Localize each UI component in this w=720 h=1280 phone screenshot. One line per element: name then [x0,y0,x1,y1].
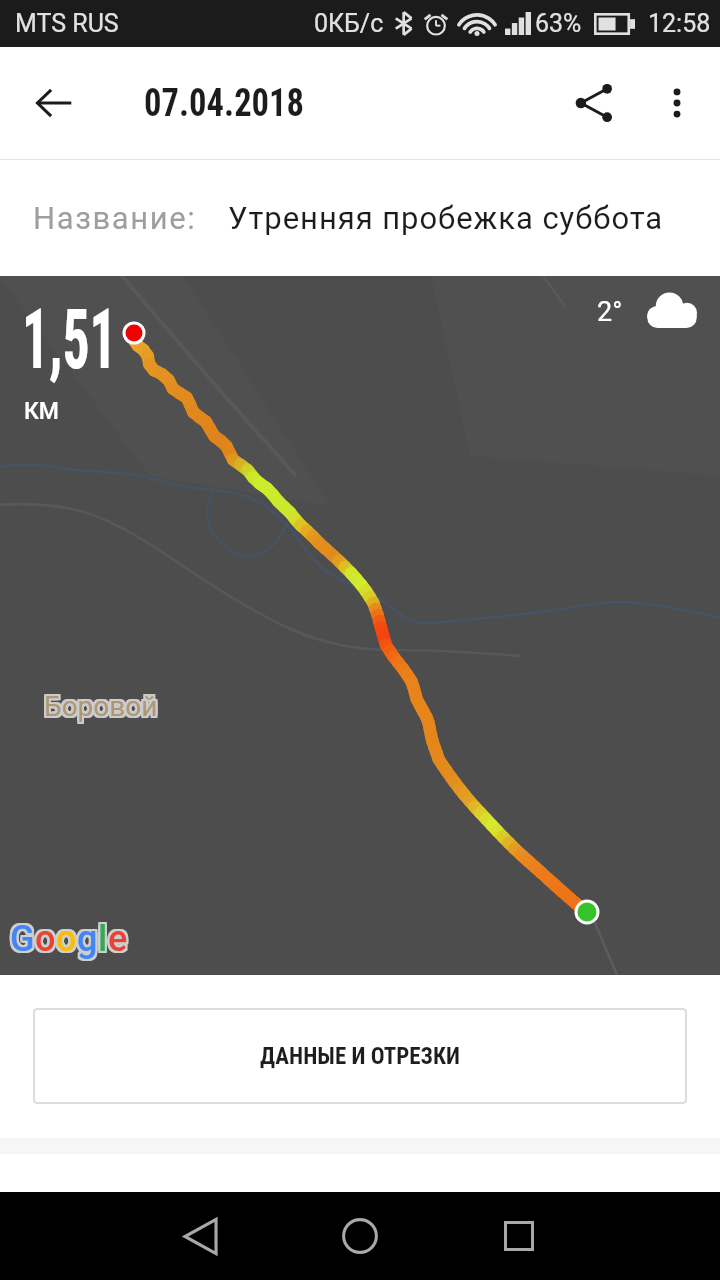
staticText: o [35,918,56,960]
staticText: o [35,916,56,958]
staticText: e [110,920,130,962]
staticText: Боровой [42,692,156,725]
staticText: o [56,920,77,962]
staticText: Боровой [46,688,160,721]
staticText: l [98,920,108,962]
staticText: o [56,916,77,958]
staticText: G [10,916,35,958]
staticText: l [100,920,110,962]
staticText: g [77,918,98,960]
staticText: g [75,916,96,958]
staticText: g [77,920,98,962]
staticText: l [96,916,106,958]
staticText: G [10,920,35,962]
staticText: G [12,920,37,962]
staticText: G [8,918,33,960]
staticText: 63% [535,9,582,38]
staticText: o [56,918,77,960]
staticText: g [79,920,100,962]
staticText: e [106,918,126,960]
staticText: o [33,916,54,958]
staticText: o [35,920,56,962]
staticText: Боровой [44,688,158,721]
staticText: Боровой [42,690,156,723]
staticText: G [10,918,35,960]
button[interactable]: Back [160,1196,240,1276]
staticText: 12:58 [648,9,711,38]
staticText: Боровой [46,690,160,723]
staticText: G [8,920,33,962]
button[interactable]: Back [16,65,92,141]
staticText: e [108,918,128,960]
staticText: КМ [24,398,59,425]
staticText: o [58,916,79,958]
staticText: Боровой [46,692,160,725]
staticText: 1,51 [22,290,117,388]
staticText: l [96,920,106,962]
button[interactable]: Home [320,1196,400,1276]
staticText: o [54,916,75,958]
staticText: G [12,918,37,960]
button[interactable]: Recents [479,1196,559,1276]
staticText: e [108,916,128,958]
staticText: Боровой [44,690,158,723]
staticText: l [100,916,110,958]
staticText: 07.04.2018 [144,81,304,126]
staticText: o [58,918,79,960]
staticText: g [77,916,98,958]
staticText: l [96,918,106,960]
staticText: e [106,920,126,962]
staticText: o [33,920,54,962]
staticText: e [110,918,130,960]
staticText: o [54,920,75,962]
staticText: ДАННЫЕ И ОТРЕЗКИ [260,1043,460,1070]
staticText: MTS RUS [15,9,119,38]
staticText: o [33,918,54,960]
staticText: o [37,918,58,960]
staticText: o [37,916,58,958]
staticText: 2° [597,296,623,328]
staticText: o [37,920,58,962]
staticText: Боровой [44,692,158,725]
staticText: e [108,920,128,962]
staticText: l [98,918,108,960]
button[interactable]: More options [639,65,715,141]
staticText: G [12,916,37,958]
staticText: g [79,916,100,958]
staticText: Боровой [42,688,156,721]
staticText: e [110,916,130,958]
staticText: 0КБ/c [314,9,384,38]
staticText: e [106,916,126,958]
button[interactable]: ДАННЫЕ И ОТРЕЗКИ [33,1008,687,1104]
staticText: g [75,918,96,960]
button[interactable]: Share [556,65,632,141]
staticText: g [79,918,100,960]
staticText: Название: [33,200,197,236]
staticText: G [8,916,33,958]
staticText: Утренняя пробежка суббота [228,200,664,236]
staticText: l [98,916,108,958]
staticText: l [100,918,110,960]
staticText: g [75,920,96,962]
staticText: o [58,920,79,962]
staticText: o [54,918,75,960]
